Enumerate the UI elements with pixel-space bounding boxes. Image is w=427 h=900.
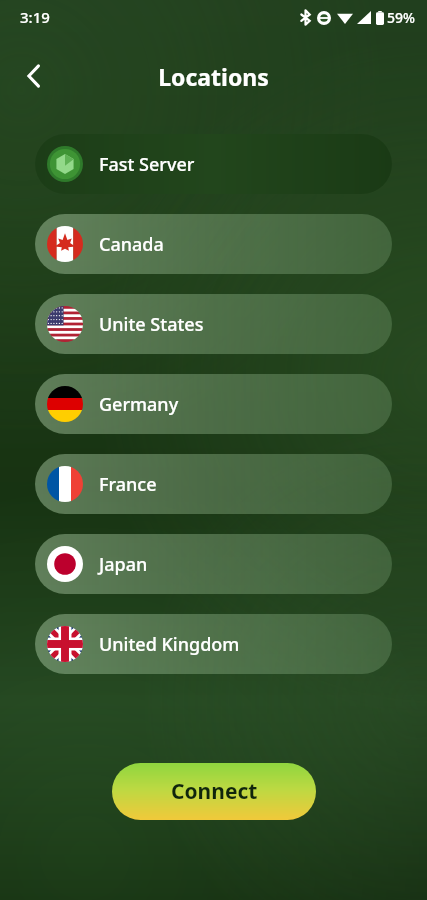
staticText: Canada — [99, 232, 164, 257]
staticText: Germany — [99, 392, 179, 417]
button[interactable]: Unite States — [35, 294, 392, 354]
staticText: France — [99, 472, 157, 497]
button[interactable]: Back — [12, 54, 56, 98]
staticText: Locations — [158, 61, 269, 92]
staticText: Japan — [99, 552, 148, 577]
staticText: 3:19 — [20, 7, 50, 27]
button[interactable]: Japan — [35, 534, 392, 594]
staticText: Fast Server — [99, 152, 195, 177]
button[interactable]: Germany — [35, 374, 392, 434]
button[interactable]: Canada — [35, 214, 392, 274]
staticText: 59% — [387, 8, 415, 27]
button[interactable]: Fast Server — [35, 134, 392, 194]
staticText: Unite States — [99, 312, 204, 337]
button[interactable]: United Kingdom — [35, 614, 392, 674]
button[interactable]: Connect — [112, 763, 316, 820]
staticText: Connect — [171, 777, 258, 806]
button[interactable]: France — [35, 454, 392, 514]
staticText: United Kingdom — [99, 632, 240, 657]
